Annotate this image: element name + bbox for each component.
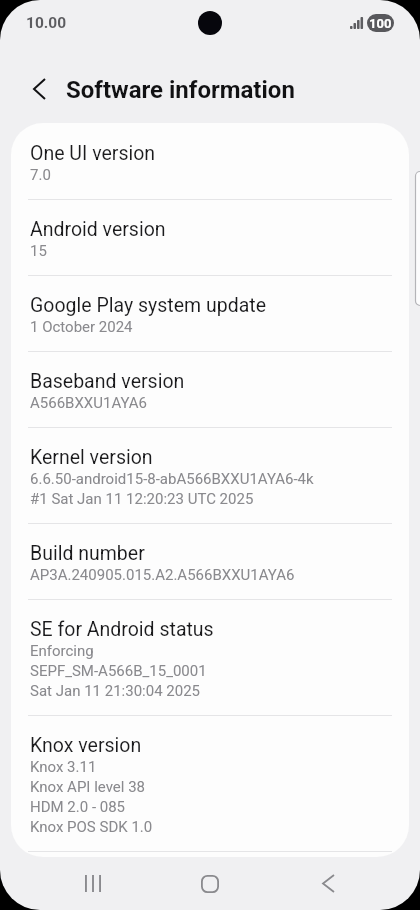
staticText: Software information xyxy=(66,76,295,104)
staticText: Kernel version xyxy=(30,447,153,468)
button[interactable]: Kernel version xyxy=(11,428,409,524)
staticText: 6.6.50-android15-8-abA566BXXU1AYA6-4k xyxy=(30,468,314,488)
staticText: HDM 2.0 - 085 xyxy=(30,796,126,816)
staticText: 15 xyxy=(30,240,47,260)
staticText: 1 October 2024 xyxy=(30,316,133,336)
staticText: AP3A.240905.015.A2.A566BXXU1AYA6 xyxy=(30,564,295,584)
staticText: Knox version xyxy=(30,735,142,756)
staticText: One UI version xyxy=(30,143,156,164)
staticText: 7.0 xyxy=(30,164,51,184)
button[interactable]: Back xyxy=(280,857,420,910)
button[interactable]: Knox version xyxy=(11,716,409,852)
staticText: Knox API level 38 xyxy=(30,776,145,796)
button[interactable]: Baseband version xyxy=(11,352,409,428)
button[interactable]: Recent apps xyxy=(0,857,140,910)
button[interactable]: Navigate up xyxy=(14,63,65,114)
staticText: Baseband version xyxy=(30,371,185,392)
button[interactable]: Build number xyxy=(11,524,409,600)
staticText: Knox POS SDK 1.0 xyxy=(30,816,153,836)
button[interactable]: Google Play system update xyxy=(11,276,409,352)
button[interactable]: One UI version xyxy=(11,124,409,200)
button[interactable]: Home xyxy=(140,857,280,910)
staticText: 10.00 xyxy=(26,14,67,32)
staticText: Enforcing xyxy=(30,640,94,660)
staticText: Google Play system update xyxy=(30,295,266,316)
staticText: Knox 3.11 xyxy=(30,756,97,776)
button[interactable]: Android version xyxy=(11,200,409,276)
staticText: Build number xyxy=(30,543,145,564)
staticText: Sat Jan 11 21:30:04 2025 xyxy=(30,680,201,700)
staticText: SEPF_SM-A566B_15_0001 xyxy=(30,660,207,680)
staticText: 100 xyxy=(369,16,392,31)
staticText: SE for Android status xyxy=(30,619,214,640)
staticText: #1 Sat Jan 11 12:20:23 UTC 2025 xyxy=(30,488,254,508)
staticText: A566BXXU1AYA6 xyxy=(30,392,148,412)
staticText: Android version xyxy=(30,219,166,240)
button[interactable]: SE for Android status xyxy=(11,600,409,716)
